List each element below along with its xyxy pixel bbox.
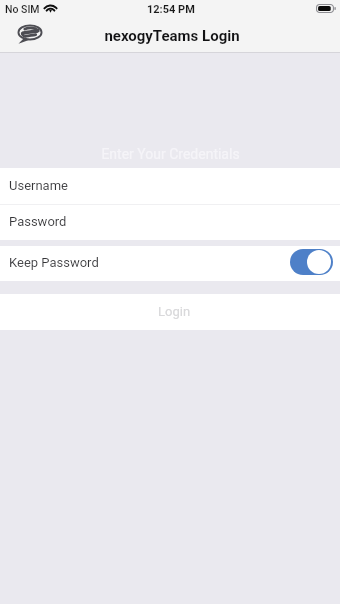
button[interactable]: Login <box>0 294 340 330</box>
staticText: Password <box>9 214 67 229</box>
staticText: 12:54 PM <box>147 3 195 16</box>
staticText: nexogyTeams Login <box>104 27 240 45</box>
staticText: Keep Password <box>9 255 99 270</box>
staticText: Username <box>9 178 68 193</box>
staticText: Login <box>158 304 191 319</box>
button[interactable]: Username <box>0 168 340 204</box>
button[interactable]: Keep Password <box>290 249 333 275</box>
staticText: No SIM <box>5 3 40 15</box>
button[interactable]: Password <box>0 205 340 240</box>
button[interactable]: nexogy menu <box>17 24 43 44</box>
button[interactable]: Keep Password <box>0 246 340 281</box>
staticText: Enter Your Credentials <box>101 146 240 162</box>
